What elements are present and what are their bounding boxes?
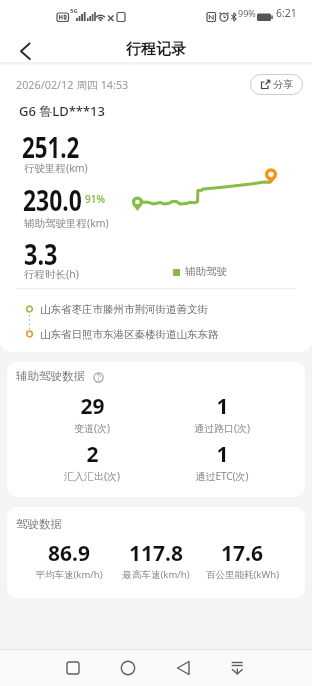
staticText: 驾驶数据 [16,517,62,531]
staticText: G6 鲁LD***13 [19,102,105,120]
button[interactable] [156,649,234,686]
staticText: 2026/02/12 周四 14:53 [16,77,129,92]
staticText: 1 [216,392,229,421]
staticText: 辅助驾驶 [185,265,227,278]
staticText: 3.3 [24,234,58,273]
button[interactable]: 分享 [250,74,303,95]
staticText: 117.8 [129,539,183,568]
staticText: 17.6 [221,539,263,568]
staticText: 91% [85,192,105,206]
staticText: 汇入汇出(次) [64,469,120,483]
staticText: 86.9 [48,539,90,568]
staticText: 5G [70,7,78,15]
staticText: 辅助驾驶里程(km) [24,216,109,230]
staticText: 百公里能耗(kWh) [206,568,279,581]
staticText: 行程时长(h) [24,267,79,281]
staticText: 行程记录 [126,40,186,59]
staticText: 变道(次) [74,421,110,435]
staticText: 2 [86,440,99,469]
staticText: 山东省枣庄市滕州市荆河街道善文街 [40,303,208,316]
staticText: 通过ETC(次) [195,469,249,483]
staticText: 平均车速(km/h) [35,568,103,581]
staticText: 1 [216,440,229,469]
staticText: 6:21 [276,6,297,20]
staticText: 29 [80,392,105,421]
staticText: 行驶里程(km) [24,161,88,175]
button[interactable] [10,34,42,66]
staticText: 最高车速(km/h) [122,568,190,581]
button[interactable] [93,372,104,383]
button[interactable] [234,649,312,686]
button[interactable] [0,649,78,686]
staticText: 山东省日照市东港区秦楼街道山东东路 [40,328,219,341]
button[interactable] [78,649,156,686]
staticText: 99% [238,7,256,19]
staticText: 251.2 [22,127,80,166]
staticText: 通过路口(次) [194,421,250,435]
staticText: 230.0 [23,180,82,219]
staticText: 辅助驾驶数据 [16,369,85,383]
staticText: 分享 [273,78,293,91]
